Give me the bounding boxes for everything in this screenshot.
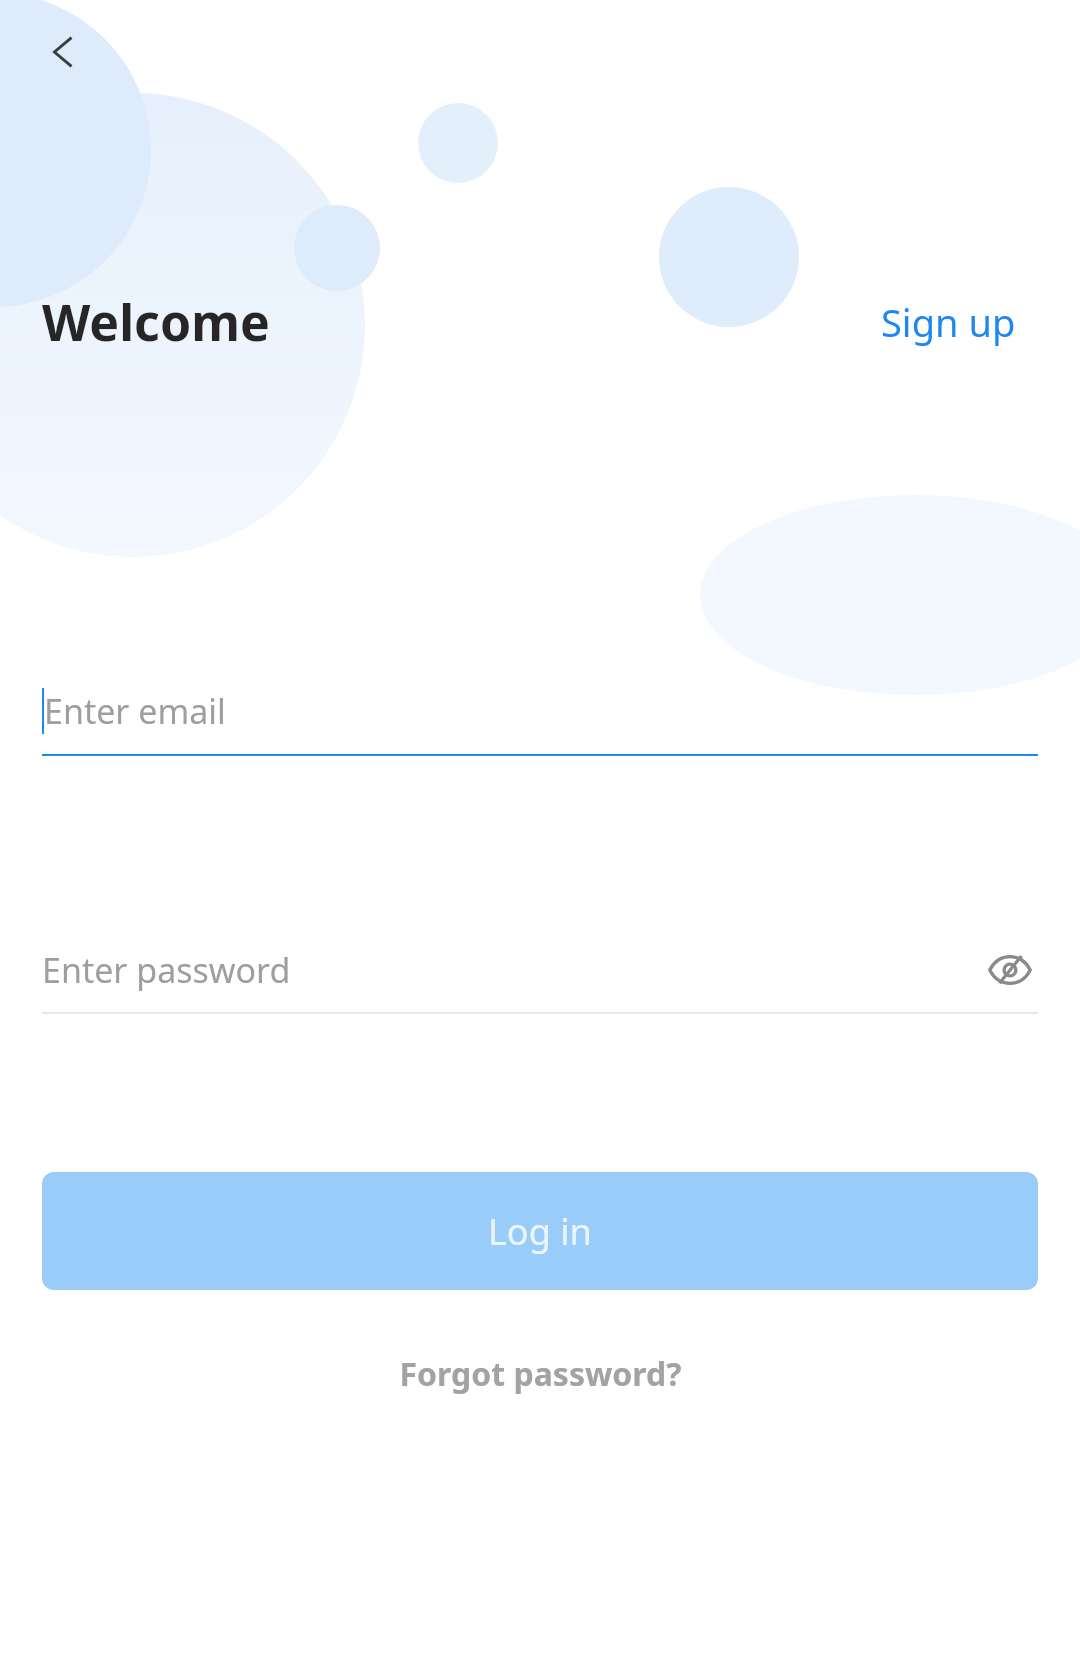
staticText: Forgot password? (399, 1352, 682, 1396)
staticText: Enter password (42, 947, 291, 993)
button[interactable]: Enter password (42, 942, 1038, 1014)
button[interactable]: Forgot password? (383, 1342, 698, 1406)
button[interactable]: Sign up (877, 290, 1020, 354)
button[interactable]: Back (28, 16, 100, 88)
button[interactable]: Log in (42, 1172, 1038, 1290)
staticText: Sign up (881, 296, 1016, 348)
button[interactable]: Enter email (42, 688, 1038, 756)
button[interactable]: Show password (982, 942, 1038, 998)
staticText: Welcome (42, 288, 270, 356)
staticText: Enter email (44, 688, 226, 734)
staticText: Log in (488, 1207, 592, 1256)
